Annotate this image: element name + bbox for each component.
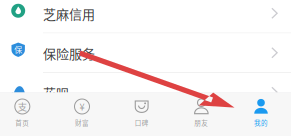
staticText: 保险服务 — [43, 43, 95, 62]
staticText: 支 — [18, 100, 27, 113]
staticText: 口碑 — [135, 118, 149, 127]
staticText: 朋友 — [194, 118, 208, 127]
staticText: ¥ — [79, 100, 84, 113]
button[interactable]: 花呗 — [0, 73, 291, 112]
staticText: 财富 — [75, 118, 89, 127]
staticText: 我的 — [254, 118, 268, 127]
staticText: 芝麻信用 — [43, 4, 95, 23]
staticText: 花呗 — [43, 83, 69, 102]
button[interactable]: 支 — [0, 92, 52, 133]
button[interactable]: 朋友 — [171, 92, 231, 133]
button[interactable]: ¥ — [52, 92, 112, 133]
staticText: 首页 — [15, 118, 29, 127]
button[interactable]: 口碑 — [112, 92, 171, 133]
button[interactable]: 芝麻信用 — [0, 0, 291, 33]
button[interactable]: 我的 — [231, 92, 291, 133]
button[interactable]: 保 — [0, 33, 291, 73]
staticText: 保 — [14, 44, 22, 55]
